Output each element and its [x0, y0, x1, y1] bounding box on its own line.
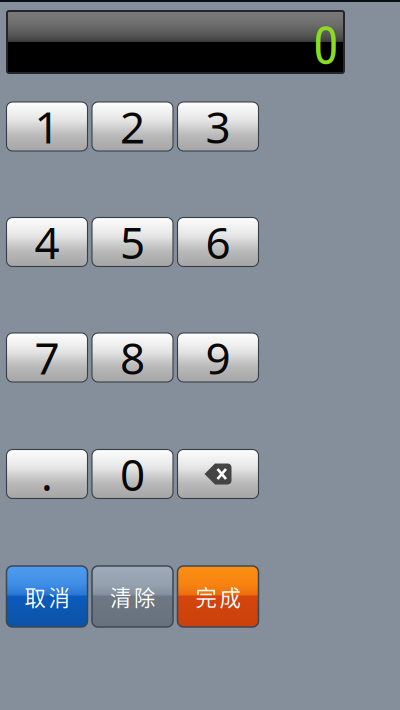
staticText: 5: [120, 212, 145, 272]
staticText: 4: [34, 212, 59, 272]
staticText: 7: [34, 327, 59, 387]
staticText: .: [41, 444, 53, 504]
button[interactable]: 3: [177, 102, 258, 151]
button[interactable]: 0: [92, 449, 173, 498]
staticText: 取消: [24, 581, 69, 612]
button[interactable]: .: [6, 449, 87, 498]
button[interactable]: 4: [6, 217, 87, 266]
button[interactable]: Backspace: [177, 449, 258, 498]
button[interactable]: 7: [6, 333, 87, 382]
button[interactable]: 取消: [6, 566, 87, 627]
staticText: 8: [120, 327, 145, 387]
staticText: 6: [205, 212, 230, 272]
button[interactable]: 6: [177, 217, 258, 266]
staticText: 1: [34, 96, 59, 156]
button[interactable]: 清除: [92, 566, 173, 627]
staticText: 3: [205, 96, 230, 156]
button[interactable]: 9: [177, 333, 258, 382]
staticText: 清除: [110, 581, 155, 612]
staticText: 0: [313, 15, 339, 76]
button[interactable]: 完成: [177, 566, 258, 627]
button[interactable]: 5: [92, 217, 173, 266]
staticText: 完成: [195, 581, 240, 612]
staticText: 9: [205, 327, 230, 387]
staticText: 0: [120, 444, 145, 504]
staticText: 2: [120, 96, 145, 156]
button[interactable]: 2: [92, 102, 173, 151]
button[interactable]: 8: [92, 333, 173, 382]
button[interactable]: 1: [6, 102, 87, 151]
